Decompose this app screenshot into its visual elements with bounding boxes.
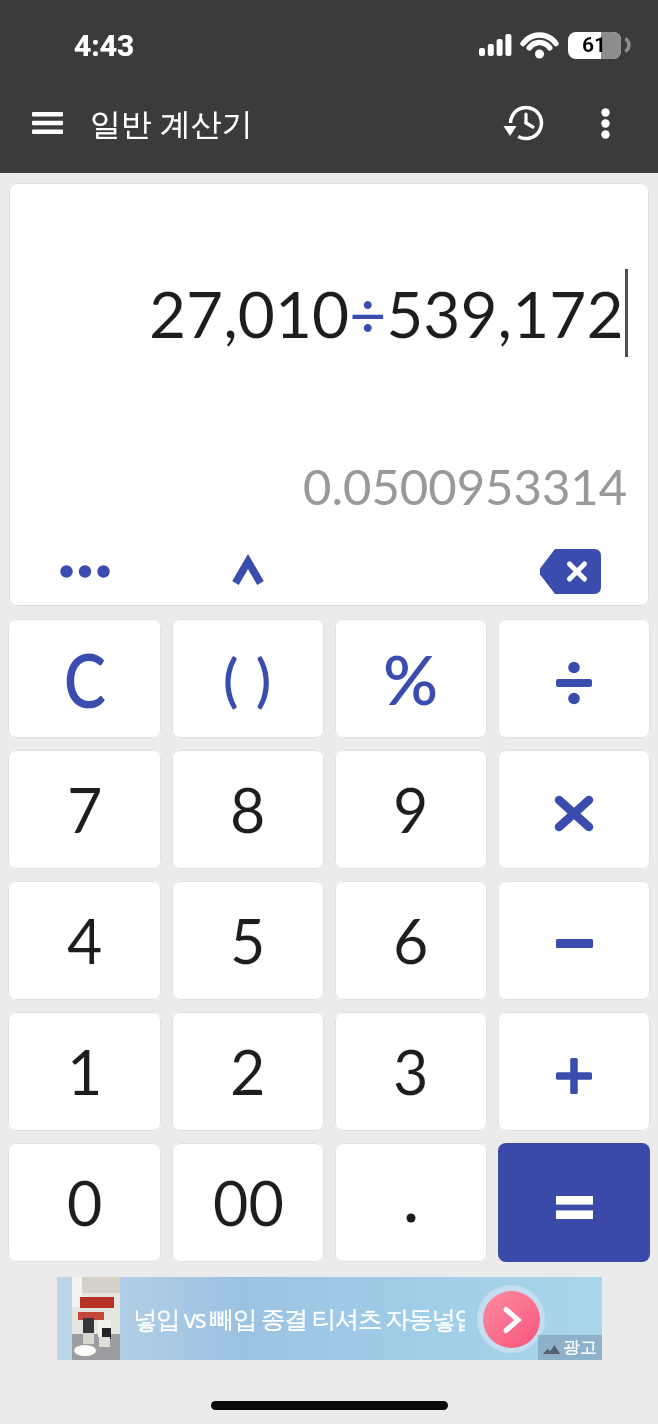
staticText: 일반 계산기: [90, 102, 254, 144]
staticText: 1: [67, 1035, 103, 1108]
staticText: 광고: [563, 1337, 597, 1358]
staticText: 4:43: [74, 28, 135, 63]
button[interactable]: [532, 545, 608, 597]
staticText: 3: [393, 1035, 429, 1108]
button[interactable]: 1: [8, 1012, 161, 1131]
button[interactable]: [576, 94, 634, 152]
button[interactable]: [498, 1012, 650, 1131]
staticText: 7: [67, 773, 103, 846]
staticText: C: [64, 634, 106, 724]
staticText: 00: [213, 1166, 284, 1239]
staticText: 넣입 vs 빼입 종결 티셔츠 자동넣입 ...: [133, 1302, 465, 1335]
button[interactable]: 3: [335, 1012, 487, 1131]
button[interactable]: 5: [172, 881, 324, 1000]
button[interactable]: [16, 92, 78, 154]
button[interactable]: %: [335, 619, 487, 738]
staticText: 4: [67, 904, 103, 977]
button[interactable]: 6: [335, 881, 487, 1000]
staticText: 0.0500953314: [303, 457, 628, 516]
button[interactable]: 9: [335, 750, 487, 869]
staticText: 0: [67, 1166, 103, 1239]
button[interactable]: 넣입 vs 빼입 종결 티셔츠 자동넣입 ...: [57, 1277, 602, 1360]
button[interactable]: [42, 545, 128, 597]
button[interactable]: [498, 881, 650, 1000]
button[interactable]: [498, 619, 650, 738]
staticText: 27,010÷539,172: [149, 275, 624, 352]
staticText: 9: [393, 773, 429, 846]
button[interactable]: [335, 1143, 487, 1262]
button[interactable]: ( ): [172, 619, 324, 738]
button[interactable]: [494, 92, 556, 154]
button[interactable]: 4: [8, 881, 161, 1000]
staticText: %: [383, 638, 439, 720]
button[interactable]: 00: [172, 1143, 324, 1262]
button[interactable]: 2: [172, 1012, 324, 1131]
button[interactable]: 0: [8, 1143, 161, 1262]
staticText: 2: [230, 1035, 266, 1108]
button[interactable]: [218, 545, 278, 597]
button[interactable]: 7: [8, 750, 161, 869]
staticText: ( ): [223, 645, 273, 713]
button[interactable]: 8: [172, 750, 324, 869]
staticText: 5: [230, 904, 266, 977]
staticText: 6: [393, 904, 429, 977]
staticText: 8: [230, 773, 266, 846]
button[interactable]: [498, 1143, 650, 1262]
button[interactable]: [498, 750, 650, 869]
staticText: 61: [582, 33, 607, 58]
button[interactable]: C: [8, 619, 161, 738]
